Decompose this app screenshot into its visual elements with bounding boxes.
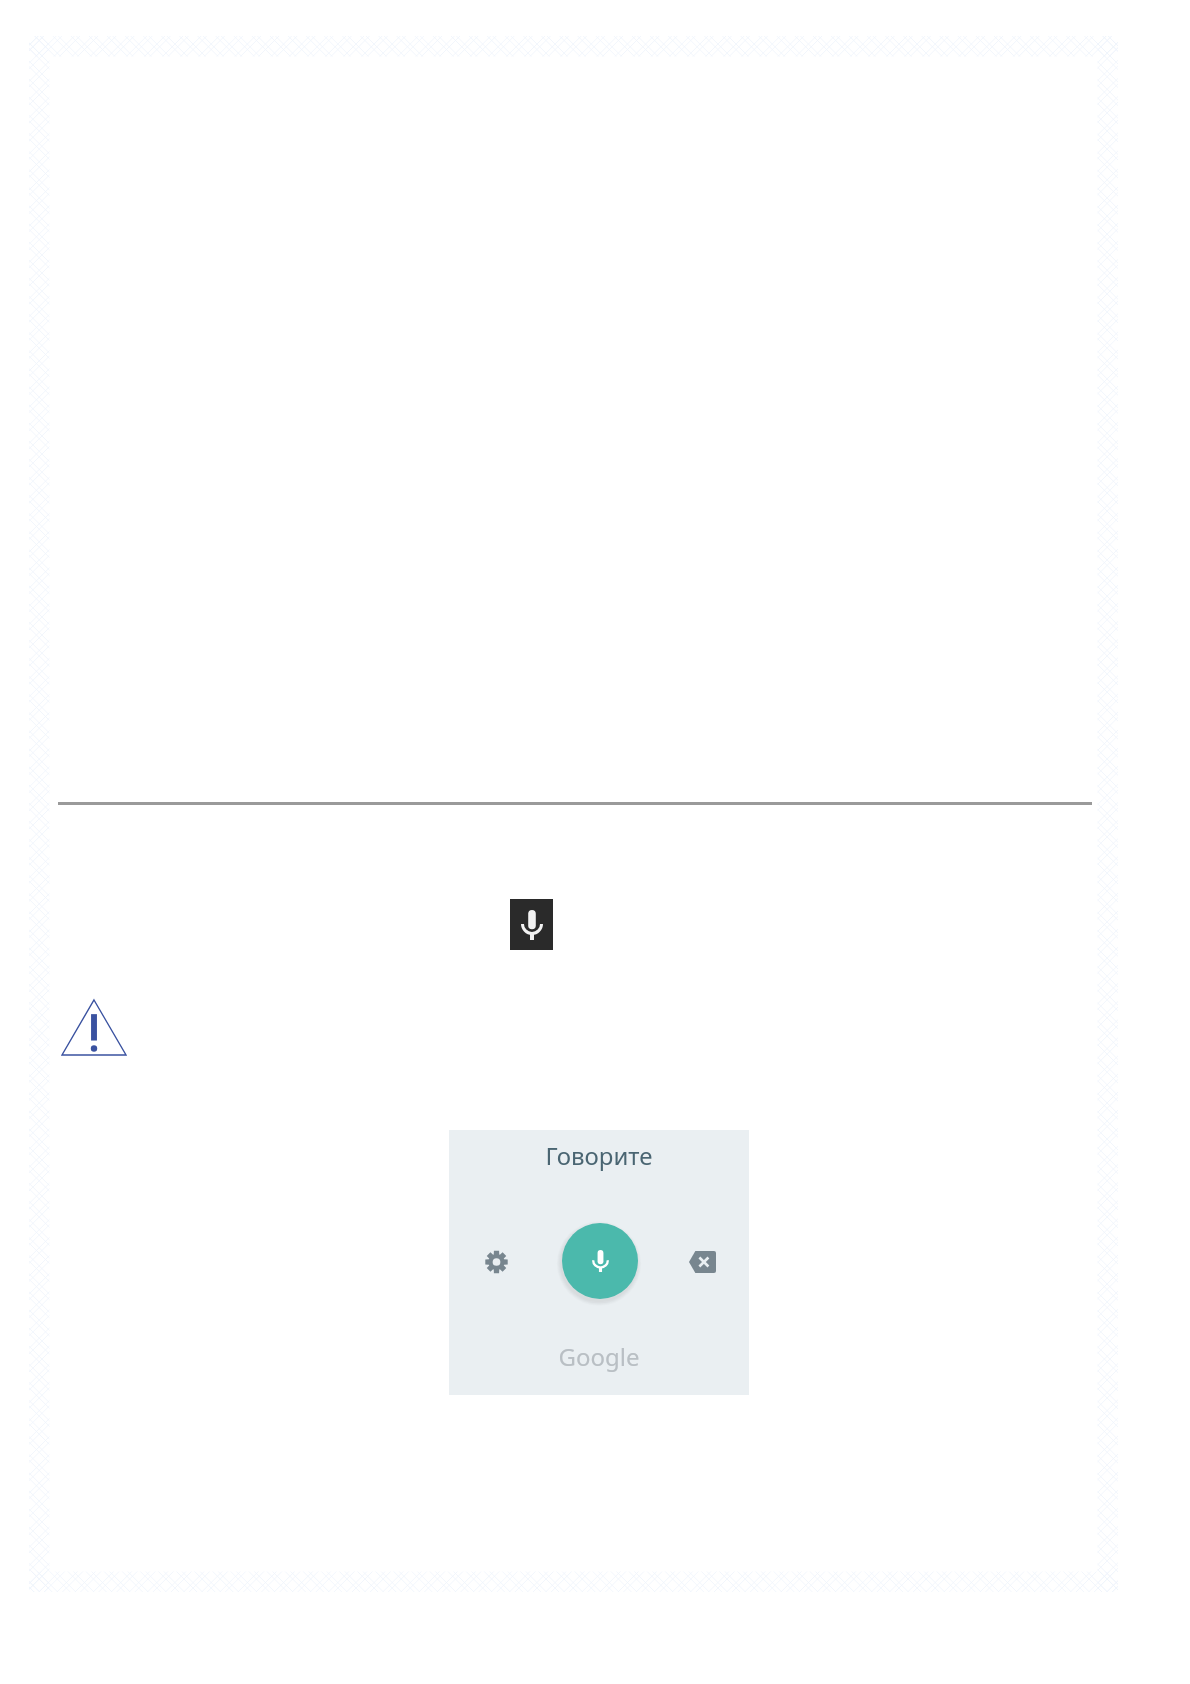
staticText: Говорите — [449, 1139, 749, 1172]
other: Warning — [62, 1000, 126, 1055]
button[interactable]: Settings — [472, 1238, 520, 1286]
staticText: Google — [449, 1340, 749, 1373]
button[interactable]: Speak — [562, 1223, 638, 1299]
button[interactable]: Voice input — [510, 899, 553, 950]
button[interactable]: Delete — [678, 1238, 726, 1286]
